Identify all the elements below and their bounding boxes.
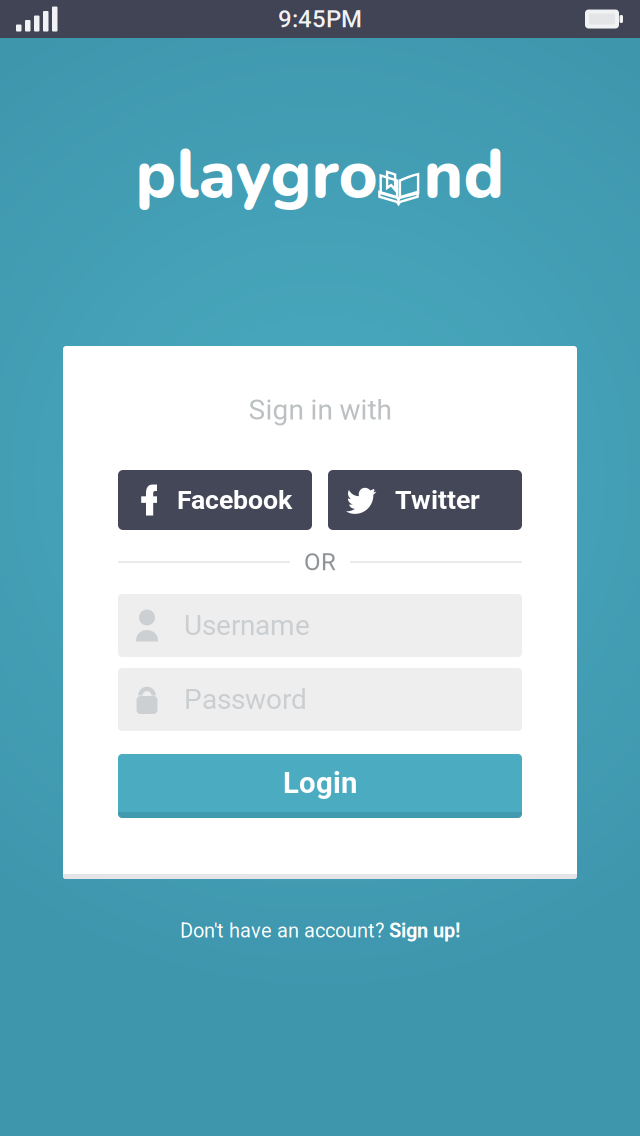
button[interactable]: Don't have an account? — [180, 919, 460, 942]
button[interactable]: Login — [118, 754, 522, 818]
staticText: OR — [304, 548, 336, 576]
staticText: Password — [184, 683, 307, 716]
staticText: Login — [283, 766, 357, 800]
staticText: Sign in with — [248, 394, 391, 426]
staticText: Username — [184, 609, 310, 642]
staticText: Don't have an account? — [180, 919, 389, 942]
staticText: nd — [423, 129, 504, 220]
staticText: 9:45PM — [278, 5, 362, 33]
staticText: playgro — [135, 129, 377, 220]
button[interactable]: Facebook — [118, 470, 312, 530]
staticText: Facebook — [177, 484, 292, 516]
button[interactable]: Twitter — [328, 470, 522, 530]
staticText: Twitter — [395, 484, 480, 516]
staticText: Sign up! — [389, 919, 460, 942]
